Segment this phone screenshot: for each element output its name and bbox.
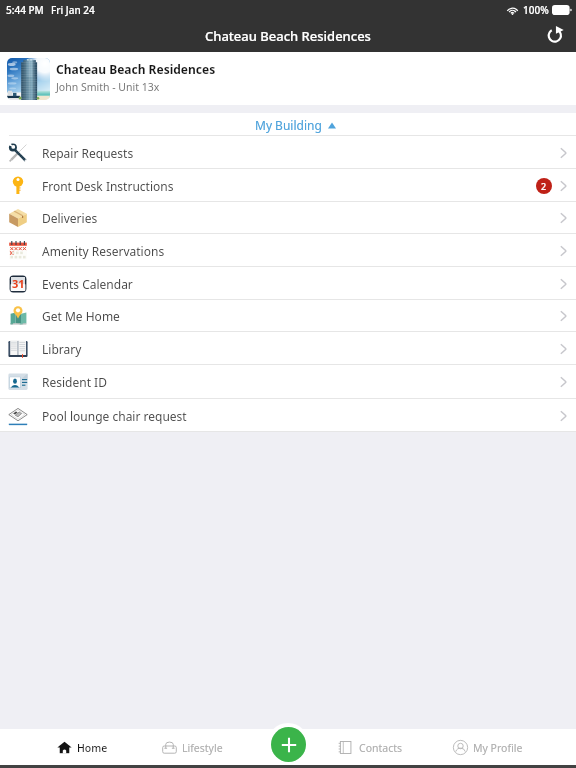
staticText: My Profile [473,741,523,755]
staticText: Chateau Beach Residences [205,27,371,45]
staticText: Pool lounge chair request [42,408,187,424]
button[interactable]: Refresh [543,24,567,48]
staticText: Lifestyle [182,741,223,755]
button[interactable]: Home [56,729,108,768]
button[interactable]: My Profile [452,729,523,768]
staticText: Deliveries [42,210,98,226]
staticText: Events Calendar [42,276,133,292]
staticText: 31 [12,276,25,291]
staticText: John Smith - Unit 13x [56,80,160,94]
staticText: 5:44 PM [6,3,44,17]
staticText: My Building [255,117,322,133]
button[interactable]: Resident ID [0,365,576,399]
staticText: 100% [523,3,549,17]
button[interactable]: Deliveries [0,202,576,234]
staticText: Get Me Home [42,308,120,324]
staticText: Front Desk Instructions [42,178,174,194]
staticText: Amenity Reservations [42,243,165,259]
staticText: 2 [541,180,547,192]
staticText: Chateau Beach Residences [56,61,216,77]
staticText: Fri Jan 24 [51,3,95,17]
staticText: Contacts [359,741,403,755]
button[interactable]: Front Desk Instructions [0,169,576,202]
button[interactable]: Add [271,727,306,762]
button[interactable]: Get Me Home [0,300,576,332]
staticText: Resident ID [42,374,107,390]
staticText: Repair Requests [42,145,134,161]
button[interactable]: My Building [255,117,336,133]
button[interactable]: Amenity Reservations [0,234,576,267]
button[interactable]: Repair Requests [0,136,576,169]
button[interactable]: Pool lounge chair request [0,399,576,432]
button[interactable]: Contacts [338,729,403,768]
staticText: Library [42,341,82,357]
staticText: Home [77,741,108,755]
button[interactable]: Lifestyle [161,729,223,768]
button[interactable]: Library [0,332,576,365]
button[interactable]: 31 [0,267,576,300]
